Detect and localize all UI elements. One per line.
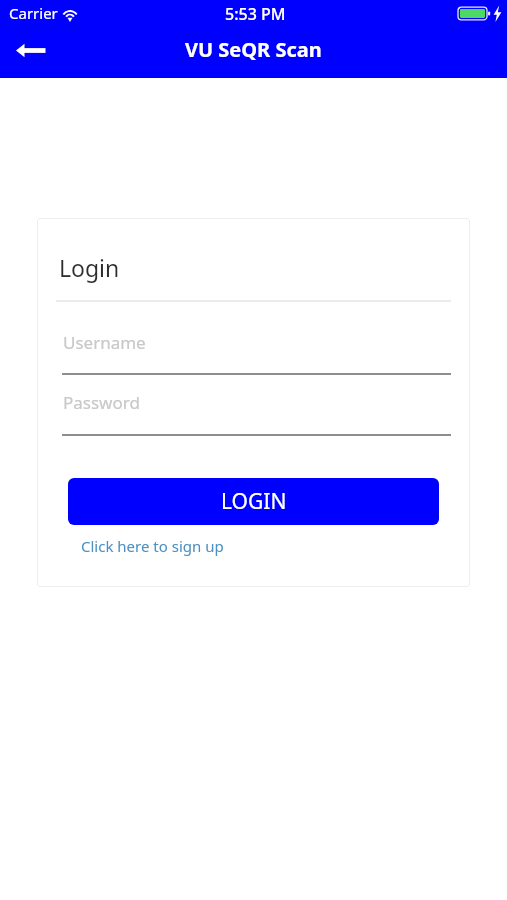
button[interactable]: Click here to sign up (81, 536, 224, 556)
staticText: 5:53 PM (225, 3, 286, 25)
button[interactable]: Username (62, 325, 451, 375)
button[interactable]: LOGIN (68, 478, 439, 525)
staticText: Password (63, 391, 140, 414)
button[interactable]: Password (62, 386, 451, 436)
staticText: Carrier (9, 3, 58, 23)
button[interactable]: Back (6, 29, 54, 73)
staticText: Click here to sign up (81, 536, 224, 556)
staticText: Login (59, 252, 120, 283)
staticText: Username (63, 331, 146, 354)
staticText: VU SeQR Scan (185, 36, 322, 63)
staticText: LOGIN (221, 487, 287, 516)
